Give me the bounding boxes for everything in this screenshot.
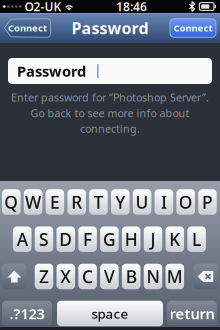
staticText: O2-UK bbox=[25, 0, 62, 14]
button[interactable]: S bbox=[35, 226, 53, 252]
button[interactable] bbox=[193, 264, 218, 289]
staticText: O bbox=[179, 190, 193, 213]
button[interactable]: T bbox=[89, 189, 108, 215]
staticText: Go back to see more info about bbox=[30, 106, 189, 120]
staticText: M bbox=[167, 265, 183, 288]
button[interactable]: X bbox=[56, 264, 75, 289]
button[interactable]: L bbox=[187, 226, 206, 252]
button[interactable]: .?123 bbox=[2, 301, 52, 326]
staticText: Connect bbox=[173, 22, 212, 34]
button[interactable]: W bbox=[24, 189, 42, 215]
button[interactable]: Q bbox=[2, 189, 21, 215]
staticText: D bbox=[59, 228, 72, 251]
staticText: E bbox=[50, 190, 60, 213]
button[interactable]: space bbox=[57, 301, 163, 326]
staticText: V bbox=[104, 265, 115, 288]
staticText: I bbox=[161, 190, 167, 213]
staticText: P bbox=[202, 190, 213, 213]
staticText: F bbox=[83, 228, 92, 251]
staticText: Z bbox=[39, 265, 49, 288]
button[interactable]: Connect bbox=[4, 19, 50, 37]
button[interactable]: O bbox=[176, 189, 195, 215]
button[interactable]: U bbox=[133, 189, 151, 215]
button[interactable]: M bbox=[165, 264, 184, 289]
staticText: W bbox=[25, 190, 41, 213]
button[interactable]: return bbox=[167, 301, 217, 326]
button[interactable]: C bbox=[78, 264, 97, 289]
button[interactable] bbox=[2, 264, 27, 289]
staticText: T bbox=[93, 190, 103, 213]
staticText: X bbox=[60, 265, 71, 288]
staticText: 18:46 bbox=[116, 0, 147, 14]
button[interactable]: I bbox=[155, 189, 173, 215]
staticText: Q bbox=[4, 190, 18, 213]
button[interactable]: Connect bbox=[170, 19, 216, 37]
button[interactable]: G bbox=[100, 226, 119, 252]
staticText: U bbox=[136, 190, 149, 213]
staticText: H bbox=[125, 228, 138, 251]
staticText: return bbox=[169, 304, 214, 323]
button[interactable]: R bbox=[67, 189, 86, 215]
button[interactable]: Y bbox=[111, 189, 130, 215]
staticText: G bbox=[103, 228, 116, 251]
staticText: Y bbox=[115, 190, 125, 213]
button[interactable]: Z bbox=[35, 264, 53, 289]
staticText: K bbox=[169, 228, 180, 251]
staticText: connecting. bbox=[80, 122, 140, 136]
button[interactable]: V bbox=[100, 264, 119, 289]
button[interactable]: P bbox=[198, 189, 217, 215]
button[interactable]: B bbox=[122, 264, 140, 289]
staticText: .?123 bbox=[9, 304, 44, 323]
button[interactable]: A bbox=[13, 226, 31, 252]
staticText: Enter password for “Photoshop Server”. bbox=[11, 90, 209, 104]
staticText: Password bbox=[17, 61, 86, 81]
button[interactable]: H bbox=[122, 226, 140, 252]
staticText: B bbox=[126, 265, 137, 288]
staticText: space bbox=[91, 305, 128, 322]
button[interactable]: F bbox=[78, 226, 97, 252]
staticText: J bbox=[150, 228, 155, 251]
staticText: R bbox=[71, 190, 82, 213]
staticText: L bbox=[192, 228, 201, 251]
button[interactable]: N bbox=[144, 264, 162, 289]
staticText: N bbox=[146, 265, 159, 288]
staticText: Connect bbox=[8, 22, 47, 34]
button[interactable]: K bbox=[165, 226, 184, 252]
button[interactable]: J bbox=[144, 226, 162, 252]
staticText: C bbox=[82, 265, 93, 288]
staticText: S bbox=[39, 228, 49, 251]
staticText: A bbox=[17, 228, 28, 251]
button[interactable]: D bbox=[56, 226, 75, 252]
staticText: Password bbox=[71, 17, 148, 39]
button[interactable]: E bbox=[46, 189, 64, 215]
